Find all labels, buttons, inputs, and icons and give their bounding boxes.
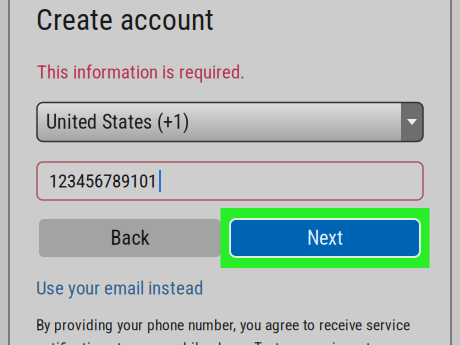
staticText: 123456789101 [49,170,157,192]
staticText: Back [110,226,149,250]
staticText: Create account [36,3,214,37]
staticText: Next [307,226,343,250]
staticText: United States (+1) [46,110,189,134]
button[interactable]: United States (+1) [37,102,423,141]
button[interactable]: Next [220,208,429,268]
button[interactable]: Use your email instead [36,278,276,298]
staticText: notifications to your mobile phone. Text… [36,339,414,345]
staticText: This information is required. [37,61,245,83]
button[interactable]: Back [39,219,221,257]
staticText: By providing your phone number, you agre… [36,316,410,334]
staticText: Use your email instead [36,277,203,299]
